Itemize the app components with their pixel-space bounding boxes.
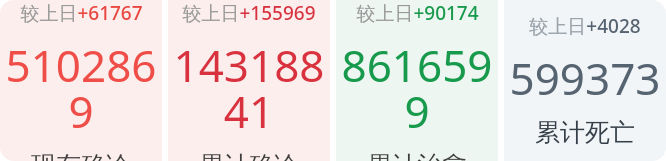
button[interactable]: 较上日+61767 xyxy=(0,0,162,161)
staticText: 较上日+4028 xyxy=(529,13,641,39)
staticText: 较上日+155969 xyxy=(182,0,316,26)
button[interactable]: 较上日+4028 xyxy=(504,0,666,161)
staticText: 较上日+61767 xyxy=(20,0,143,26)
button[interactable]: 较上日+155969 xyxy=(168,0,330,161)
button[interactable]: 较上日+90174 xyxy=(336,0,498,161)
staticText: 现有确诊 xyxy=(31,150,131,161)
staticText: 累计治愈 xyxy=(367,150,467,161)
staticText: 5102869 xyxy=(0,35,162,141)
staticText: 14318841 xyxy=(168,35,330,141)
staticText: 599373 xyxy=(509,48,661,108)
staticText: 累计死亡 xyxy=(535,117,635,148)
staticText: 较上日+90174 xyxy=(356,0,479,26)
staticText: 8616599 xyxy=(336,35,498,141)
staticText: 累计确诊 xyxy=(199,150,299,161)
